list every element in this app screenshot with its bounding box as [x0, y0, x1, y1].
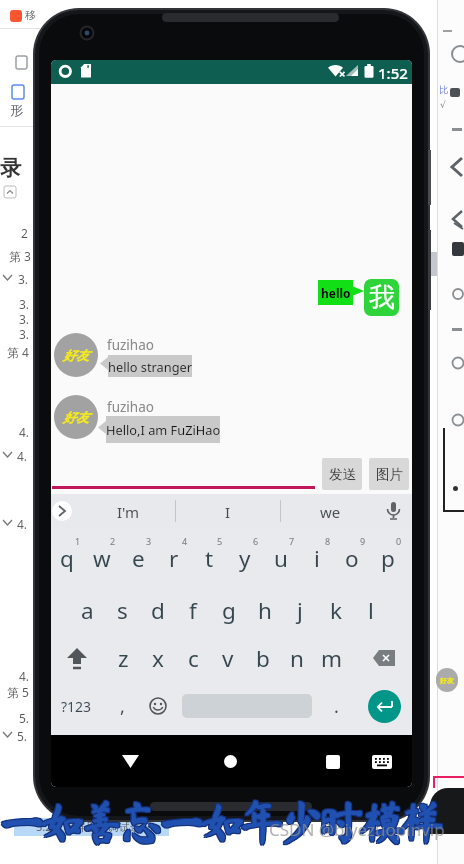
- staticText: k: [330, 595, 343, 625]
- staticText: 发送: [329, 466, 356, 483]
- staticText: 图片: [376, 466, 403, 483]
- staticText: 7: [289, 535, 295, 547]
- staticText: f: [189, 595, 197, 625]
- staticText: I'm: [117, 502, 140, 522]
- staticText: 移: [25, 8, 36, 22]
- staticText: l: [368, 595, 374, 625]
- staticText: CSDN @biyezuopinvip: [269, 818, 445, 841]
- staticText: √: [440, 100, 446, 110]
- staticText: 4.: [17, 448, 28, 464]
- staticText: 5.: [17, 728, 28, 744]
- staticText: ?123: [61, 697, 92, 716]
- button[interactable]: [326, 755, 340, 769]
- button[interactable]: [122, 755, 139, 768]
- staticText: 一如善忘一如年少时模样: [3, 798, 443, 844]
- button[interactable]: [67, 648, 87, 670]
- staticText: j: [297, 595, 303, 625]
- button[interactable]: [368, 690, 401, 723]
- staticText: q: [60, 543, 74, 573]
- staticText: 一如善忘一如年少时模样: [3, 800, 443, 846]
- staticText: 3.: [18, 271, 29, 287]
- staticText: 9: [360, 535, 366, 547]
- staticText: v: [222, 643, 234, 673]
- staticText: y: [239, 543, 251, 573]
- staticText: 5.: [19, 710, 30, 726]
- staticText: e: [132, 543, 145, 573]
- button[interactable]: [149, 697, 167, 715]
- staticText: 录: [0, 155, 21, 181]
- staticText: g: [222, 595, 236, 625]
- staticText: 6: [253, 535, 259, 547]
- button[interactable]: [373, 650, 395, 666]
- staticText: 0: [396, 535, 402, 547]
- staticText: p: [381, 543, 395, 573]
- staticText: 第 5: [7, 684, 29, 700]
- staticText: x: [152, 643, 164, 673]
- staticText: 形: [10, 102, 23, 118]
- staticText: 一如善忘一如年少时模样: [1, 798, 441, 844]
- staticText: a: [81, 595, 94, 625]
- staticText: m: [321, 643, 343, 673]
- staticText: 第 4: [7, 344, 29, 360]
- staticText: w: [93, 543, 111, 573]
- staticText: 3: [146, 535, 152, 547]
- button[interactable]: 图片: [369, 458, 409, 490]
- staticText: u: [274, 543, 288, 573]
- staticText: 1:52: [378, 63, 408, 83]
- staticText: o: [345, 543, 359, 573]
- staticText: r: [169, 543, 179, 573]
- staticText: 一如善忘一如年少时模样: [2, 799, 442, 845]
- staticText: we: [320, 502, 341, 522]
- staticText: d: [151, 595, 165, 625]
- staticText: 一如善忘一如年少时模样: [1, 800, 441, 846]
- staticText: c: [188, 643, 199, 673]
- staticText: 5: [217, 535, 223, 547]
- staticText: 比: [439, 84, 448, 95]
- staticText: s: [117, 595, 128, 625]
- staticText: n: [290, 643, 304, 673]
- staticText: .: [334, 694, 339, 719]
- staticText: 4.: [19, 424, 30, 440]
- staticText: 3.: [19, 311, 30, 327]
- staticText: 好友: [63, 409, 89, 425]
- staticText: h: [258, 595, 272, 625]
- staticText: fuzihao: [107, 398, 154, 416]
- staticText: Hello,I am FuZiHao: [106, 421, 220, 438]
- staticText: 我: [369, 281, 395, 314]
- staticText: 好友: [440, 676, 454, 685]
- staticText: 4.: [17, 516, 28, 532]
- staticText: z: [118, 643, 129, 673]
- staticText: 第 3: [9, 248, 31, 264]
- staticText: ,: [120, 694, 125, 719]
- button[interactable]: [372, 755, 392, 769]
- button[interactable]: 发送: [322, 458, 362, 490]
- staticText: hello: [321, 285, 351, 301]
- staticText: 4.: [19, 668, 30, 684]
- staticText: 2: [110, 535, 116, 547]
- staticText: 1: [75, 535, 81, 547]
- button[interactable]: [52, 501, 72, 521]
- staticText: 4: [182, 535, 188, 547]
- staticText: b: [256, 643, 270, 673]
- staticText: 2: [21, 225, 28, 241]
- staticText: fuzihao: [107, 336, 154, 354]
- staticText: 8: [325, 535, 331, 547]
- staticText: 3.: [19, 326, 30, 342]
- button[interactable]: [224, 755, 237, 768]
- staticText: t: [205, 543, 214, 573]
- staticText: hello stranger: [108, 358, 192, 375]
- staticText: 3.: [19, 296, 30, 312]
- staticText: i: [314, 543, 320, 573]
- staticText: 5.2.4 横屏显示调试适配: [36, 819, 152, 834]
- staticText: 好友: [63, 347, 89, 363]
- staticText: I: [225, 502, 231, 522]
